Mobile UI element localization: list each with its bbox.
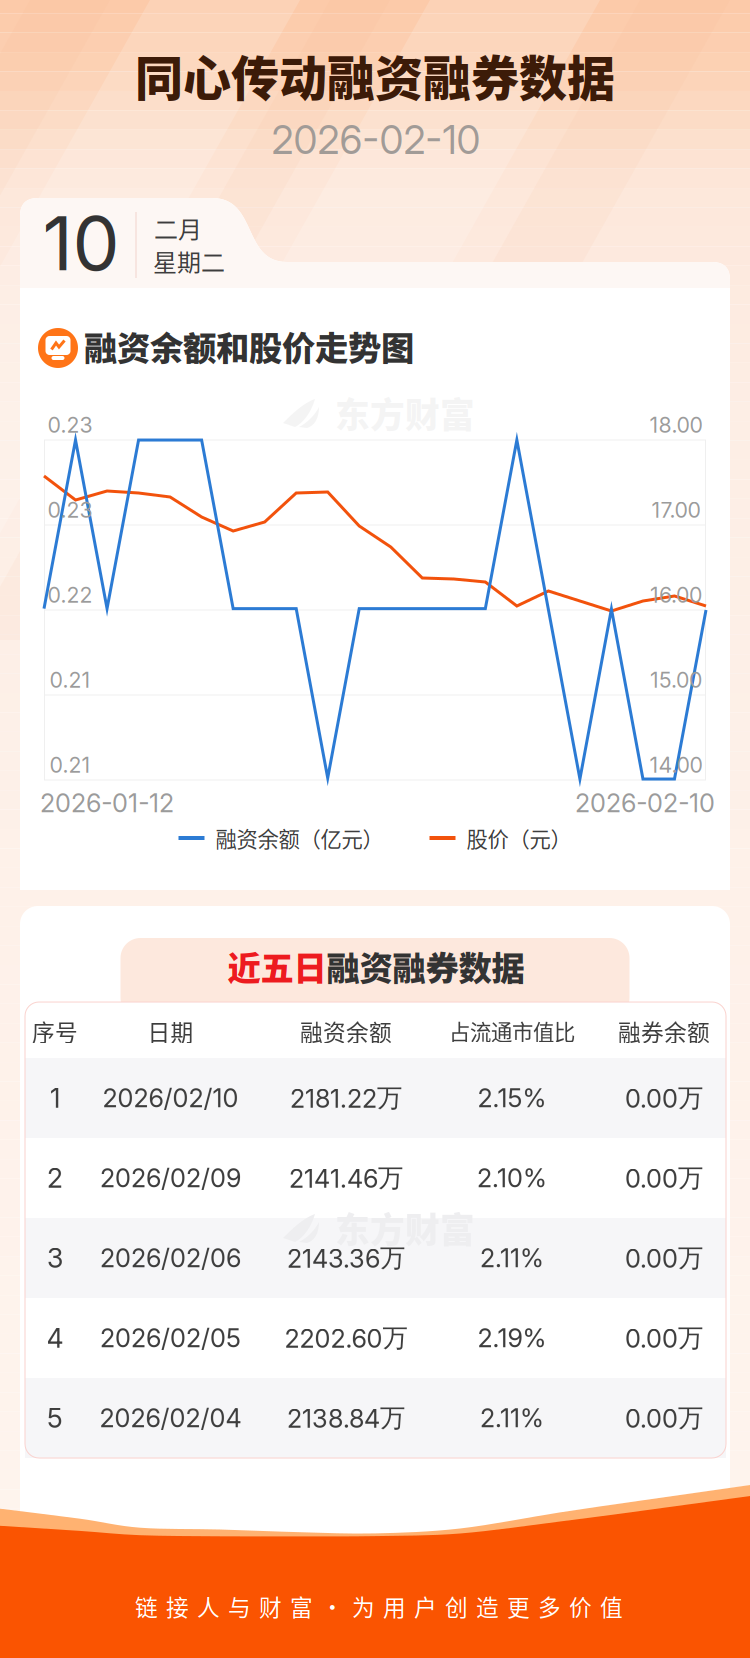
staticText: 0.21 <box>49 752 90 778</box>
staticText: 2026/02/04 <box>99 1403 241 1433</box>
staticText: 5 <box>47 1402 63 1434</box>
staticText: 融资余额（亿元） <box>215 823 383 853</box>
staticText: 2026/02/09 <box>100 1163 241 1193</box>
staticText: 星期二 <box>153 244 225 278</box>
staticText: 东方财富 <box>335 388 475 438</box>
staticText: 0.22 <box>47 582 92 608</box>
staticText: 2026/02/05 <box>100 1323 241 1353</box>
staticText: 融资融券数据 <box>326 942 524 990</box>
staticText: 序号 <box>32 1015 78 1047</box>
staticText: 日期 <box>147 1015 193 1047</box>
staticText: 融资余额和股价走势图 <box>84 322 414 370</box>
staticText: 0.00万 <box>625 1082 703 1114</box>
staticText: 15.00 <box>650 667 702 693</box>
staticText: 0.23 <box>47 412 92 438</box>
staticText: 链接人与财富·为用户创造更多价值 <box>135 1590 623 1622</box>
staticText: 近五日 <box>227 942 326 990</box>
staticText: 2.19% <box>477 1323 546 1353</box>
staticText: 10 <box>42 198 119 288</box>
staticText: 同心传动融资融券数据 <box>135 40 615 110</box>
staticText: 2138.84万 <box>287 1402 405 1434</box>
staticText: 17.00 <box>651 497 700 523</box>
staticText: 占流通市值比 <box>449 1016 575 1046</box>
staticText: 2202.60万 <box>284 1322 407 1354</box>
staticText: 东方财富 <box>335 1203 475 1253</box>
staticText: 16.00 <box>650 582 702 608</box>
staticText: 2.11% <box>480 1243 544 1273</box>
staticText: 股价（元） <box>466 823 571 853</box>
staticText: 2026-02-10 <box>575 788 715 818</box>
staticText: 2026-01-12 <box>40 788 174 818</box>
staticText: 3 <box>47 1242 63 1274</box>
staticText: 2026/02/06 <box>100 1243 241 1273</box>
staticText: 2026-02-10 <box>271 117 480 163</box>
staticText: 融资余额 <box>300 1015 392 1047</box>
staticText: 2181.22万 <box>290 1082 402 1114</box>
staticText: 4 <box>46 1322 63 1354</box>
staticText: 二月 <box>154 211 202 245</box>
staticText: 2026/02/10 <box>102 1083 238 1113</box>
staticText: 2 <box>47 1162 63 1194</box>
staticText: 0.00万 <box>625 1322 703 1354</box>
staticText: 0.21 <box>49 667 90 693</box>
staticText: 2.15% <box>477 1083 546 1113</box>
staticText: 0.23 <box>47 497 92 523</box>
staticText: 2143.36万 <box>287 1242 405 1274</box>
staticText: 2141.46万 <box>289 1162 403 1194</box>
staticText: 0.00万 <box>625 1162 703 1194</box>
staticText: 1 <box>50 1082 60 1114</box>
staticText: 2.11% <box>480 1403 544 1433</box>
staticText: 融券余额 <box>618 1015 710 1047</box>
staticText: 2.10% <box>477 1163 547 1193</box>
staticText: 14.00 <box>649 752 702 778</box>
staticText: 18.00 <box>649 412 702 438</box>
staticText: 0.00万 <box>625 1242 703 1274</box>
staticText: 0.00万 <box>625 1402 703 1434</box>
